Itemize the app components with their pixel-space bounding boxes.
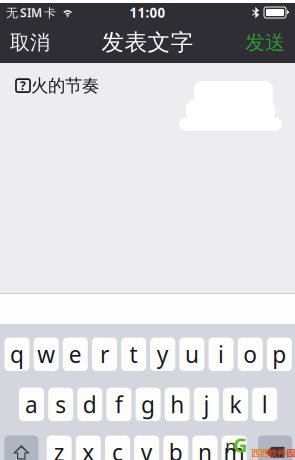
staticText: f <box>115 389 123 419</box>
button[interactable]: v <box>134 435 159 460</box>
button[interactable]: n <box>192 435 217 460</box>
staticText: 发送 <box>245 30 285 55</box>
button[interactable]: o <box>238 337 263 371</box>
staticText: x <box>82 437 94 460</box>
button[interactable]: s <box>48 388 73 421</box>
button[interactable]: 发送 <box>235 22 295 63</box>
staticText: z <box>54 437 65 460</box>
button[interactable]: q <box>4 337 29 371</box>
staticText: 取消 <box>10 30 50 55</box>
button[interactable]: c <box>105 435 130 460</box>
button[interactable]: t <box>121 337 146 371</box>
staticText: 11:00 <box>129 4 165 21</box>
staticText: ? <box>20 78 26 94</box>
button[interactable]: u <box>179 337 204 371</box>
button[interactable]: k <box>223 388 248 421</box>
staticText: o <box>243 339 257 369</box>
button[interactable]: d <box>77 388 102 421</box>
button[interactable]: z <box>47 435 72 460</box>
button[interactable]: e <box>63 337 88 371</box>
button[interactable]: h <box>165 388 190 421</box>
button[interactable]: a <box>19 388 44 421</box>
button[interactable]: y <box>150 337 175 371</box>
staticText: v <box>141 437 153 460</box>
staticText: r <box>100 339 109 369</box>
button[interactable]: i <box>209 337 234 371</box>
staticText: m <box>224 437 245 460</box>
button[interactable]: p <box>267 337 292 371</box>
button[interactable]: x <box>76 435 101 460</box>
staticText: q <box>10 339 24 369</box>
staticText: c <box>112 437 123 460</box>
staticText: 西西 <box>251 447 269 459</box>
staticText: n <box>198 437 212 460</box>
staticText: w <box>37 339 55 369</box>
staticText: G <box>233 431 247 458</box>
staticText: t <box>130 339 138 369</box>
staticText: s <box>55 389 66 419</box>
staticText: a <box>25 389 38 419</box>
staticText: 发表文字 <box>101 29 193 56</box>
button[interactable]: b <box>163 435 188 460</box>
staticText: l <box>262 389 268 419</box>
staticText: i <box>218 339 224 369</box>
button[interactable]: Shift <box>4 435 38 460</box>
button[interactable]: 取消 <box>0 22 60 63</box>
staticText: 软件园 <box>268 447 295 459</box>
button[interactable]: r <box>92 337 117 371</box>
button[interactable]: g <box>136 388 161 421</box>
staticText: k <box>230 389 242 419</box>
button[interactable]: f <box>106 388 131 421</box>
staticText: 火的节奏 <box>31 75 99 96</box>
button[interactable]: l <box>252 388 277 421</box>
staticText: p <box>272 339 286 369</box>
staticText: y <box>157 339 169 369</box>
staticText: g <box>141 389 155 419</box>
staticText: d <box>83 389 97 419</box>
staticText: b <box>169 437 183 460</box>
staticText: e <box>69 339 82 369</box>
button[interactable]: m <box>222 435 247 460</box>
button[interactable]: Delete <box>258 435 292 460</box>
staticText: j <box>203 389 209 419</box>
staticText: n <box>225 433 237 458</box>
button[interactable]: w <box>34 337 59 371</box>
staticText: 无 SIM 卡 <box>6 4 56 20</box>
button[interactable]: j <box>194 388 219 421</box>
staticText: h <box>170 389 184 419</box>
staticText: u <box>185 339 199 369</box>
